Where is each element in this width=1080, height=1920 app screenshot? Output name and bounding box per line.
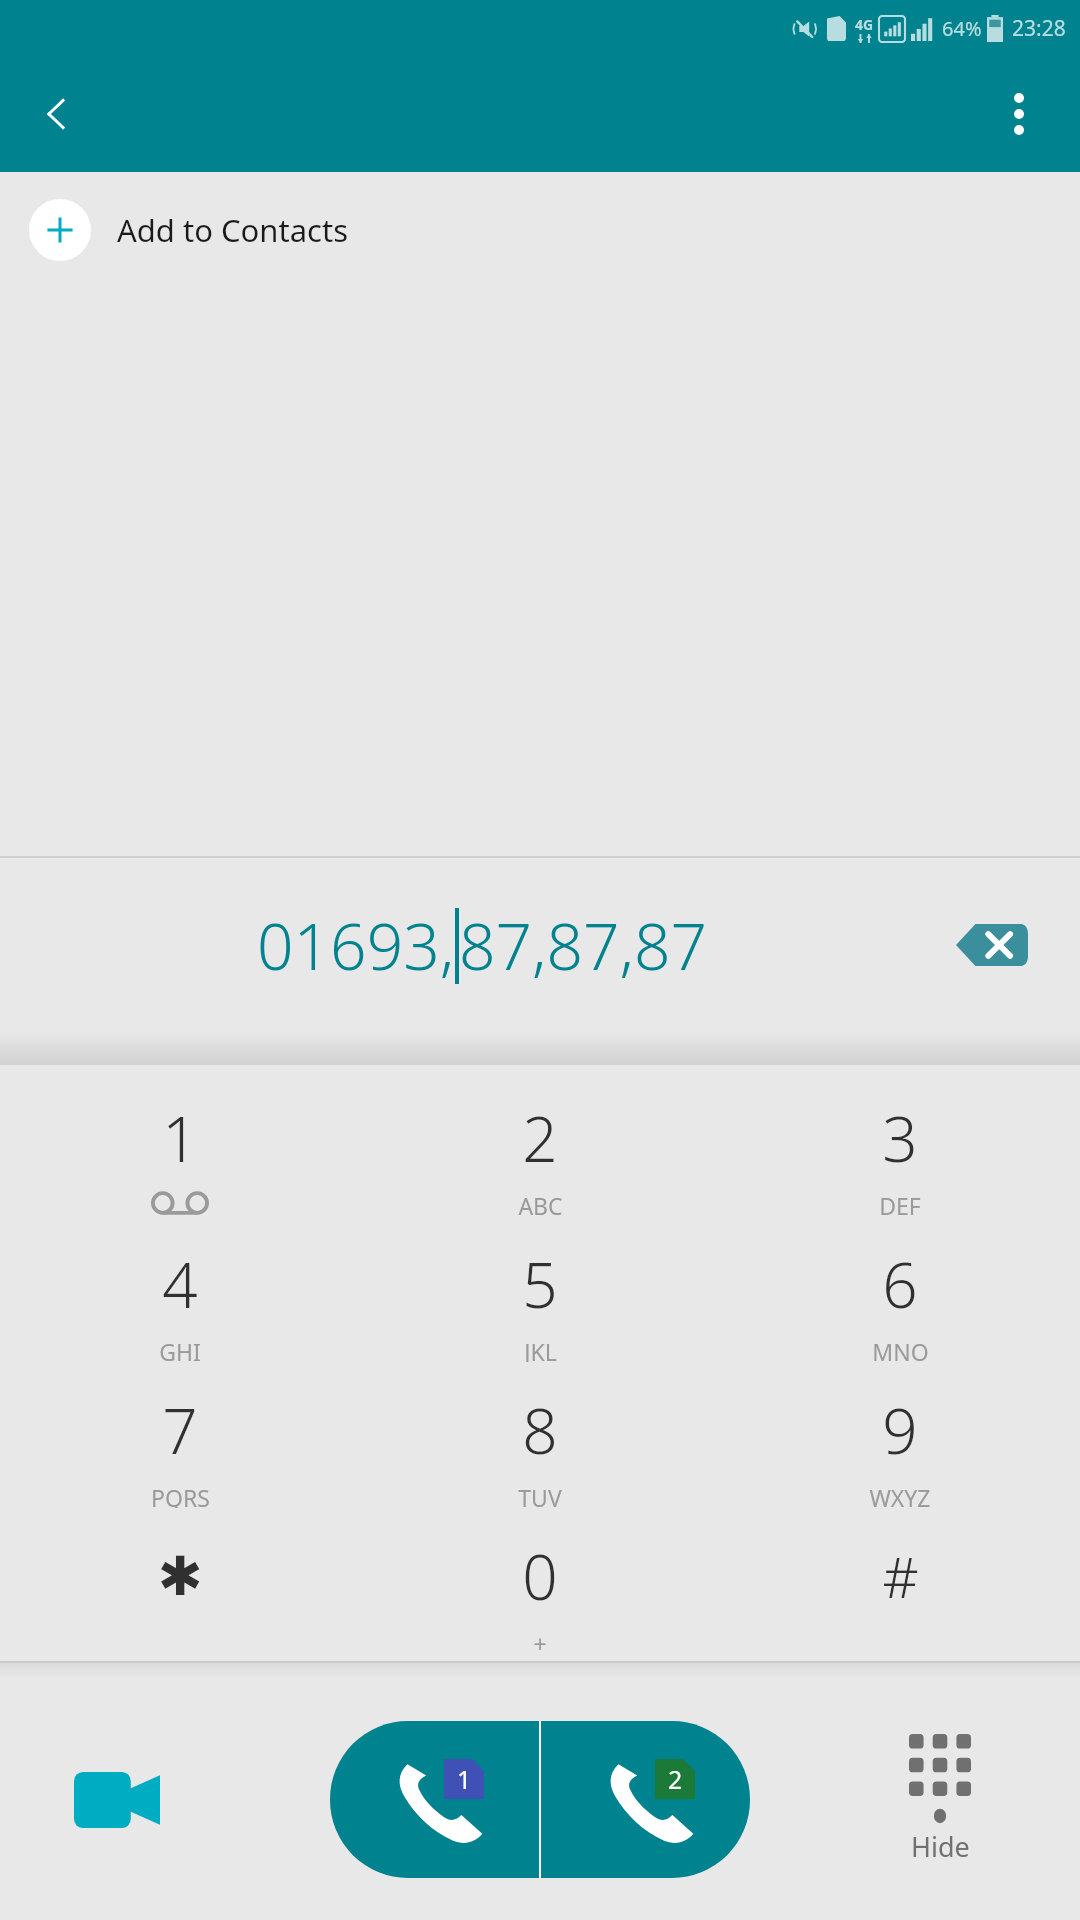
staticText: 3 [882, 1096, 918, 1180]
button[interactable]: 7 [0, 1369, 360, 1515]
button[interactable]: More options [976, 71, 1062, 157]
button[interactable]: 9 [720, 1369, 1080, 1515]
staticText: 01693, [257, 902, 455, 989]
staticText: 6 [882, 1242, 918, 1326]
staticText: 2 [522, 1096, 558, 1180]
button[interactable]: Call with SIM 1 [330, 1721, 539, 1878]
staticText: 4G [855, 15, 874, 34]
button[interactable]: ✱ [0, 1515, 360, 1661]
staticText: 87,87,87 [459, 902, 708, 989]
staticText: 64% [942, 15, 982, 42]
button[interactable]: Back [14, 71, 100, 157]
staticText: ✱ [157, 1545, 203, 1608]
staticText: PQRS [151, 1482, 210, 1508]
staticText: 1 [162, 1096, 198, 1180]
staticText: DEF [879, 1190, 921, 1216]
button[interactable]: 6 [720, 1223, 1080, 1369]
staticText: 9 [882, 1388, 918, 1472]
staticText: 8 [522, 1388, 558, 1472]
button[interactable]: Video call [62, 1745, 172, 1855]
button[interactable]: Add to Contacts [0, 172, 1080, 288]
staticText: 0 [522, 1534, 558, 1618]
button[interactable]: 0 [360, 1515, 720, 1661]
staticText: TUV [518, 1482, 562, 1508]
staticText: GHI [159, 1336, 201, 1362]
button[interactable]: Hide [860, 1734, 1020, 1865]
staticText: + [533, 1628, 547, 1654]
staticText: 5 [522, 1242, 558, 1326]
staticText: JKL [524, 1336, 557, 1362]
staticText: 7 [162, 1388, 198, 1472]
staticText: 2 [668, 1762, 683, 1796]
staticText: 1 [457, 1762, 472, 1796]
staticText: 4 [162, 1242, 198, 1326]
staticText: WXYZ [869, 1482, 931, 1508]
button[interactable]: 4 [0, 1223, 360, 1369]
staticText: # [882, 1538, 919, 1614]
button[interactable]: 2 [360, 1077, 720, 1223]
staticText: MNO [872, 1336, 929, 1362]
button[interactable]: Backspace [944, 897, 1040, 993]
button[interactable]: 5 [360, 1223, 720, 1369]
button[interactable]: Call with SIM 2 [541, 1721, 750, 1878]
button[interactable]: 1 [0, 1077, 360, 1223]
button[interactable]: 3 [720, 1077, 1080, 1223]
staticText: 23:28 [1012, 14, 1066, 43]
staticText: ABC [518, 1190, 563, 1216]
button[interactable]: # [720, 1515, 1080, 1661]
staticText: Hide [911, 1828, 970, 1865]
button[interactable]: 8 [360, 1369, 720, 1515]
staticText: Add to Contacts [117, 209, 349, 251]
